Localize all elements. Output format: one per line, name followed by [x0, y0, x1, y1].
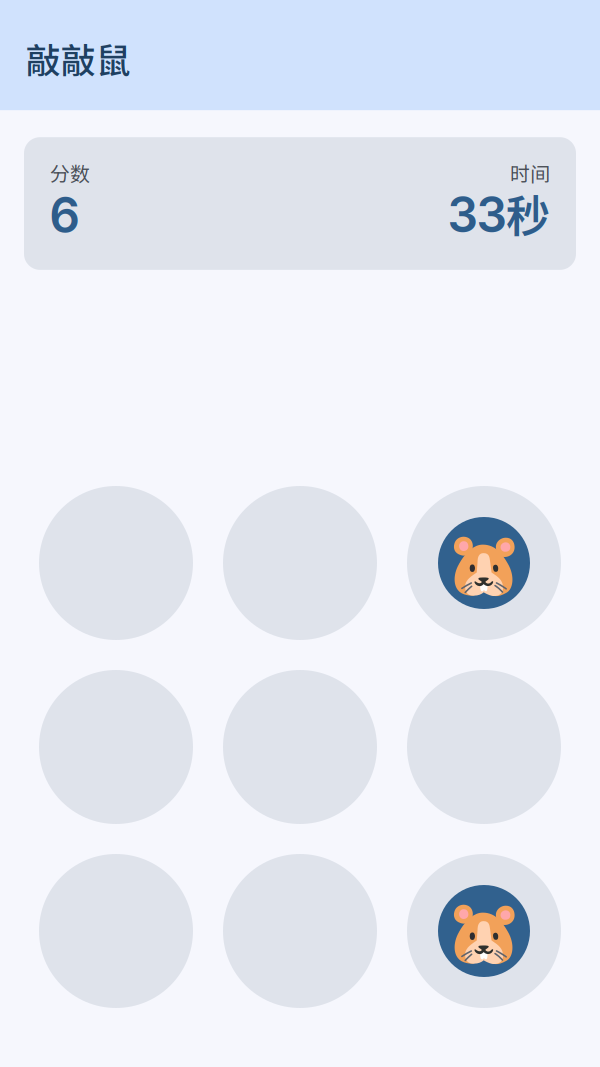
staticText: 33: [448, 186, 506, 244]
staticText: 🐹: [445, 897, 523, 969]
button[interactable]: Empty hole: [39, 854, 193, 1008]
button[interactable]: Empty hole: [223, 486, 377, 640]
button[interactable]: Empty hole: [223, 854, 377, 1008]
button[interactable]: Empty hole: [39, 670, 193, 824]
staticText: 🐹: [445, 529, 523, 601]
button[interactable]: Whack the mouse: [407, 486, 561, 640]
button[interactable]: Empty hole: [223, 670, 377, 824]
staticText: 时间: [510, 158, 550, 187]
staticText: 敲敲鼠: [26, 33, 131, 83]
button[interactable]: Whack the mouse: [407, 854, 561, 1008]
staticText: 分数: [50, 158, 90, 187]
button[interactable]: Empty hole: [407, 670, 561, 824]
staticText: 6: [50, 186, 79, 244]
button[interactable]: Empty hole: [39, 486, 193, 640]
staticText: 秒: [506, 181, 550, 245]
